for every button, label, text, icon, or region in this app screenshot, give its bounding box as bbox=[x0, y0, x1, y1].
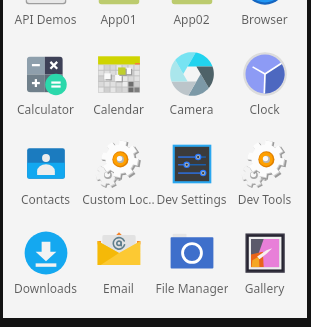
button[interactable]: App02 bbox=[155, 0, 228, 29]
staticText: App01 bbox=[82, 11, 155, 27]
button[interactable]: Downloads bbox=[9, 208, 82, 298]
staticText: Dev Settings bbox=[155, 191, 228, 207]
staticText: Calculator bbox=[9, 101, 82, 117]
button[interactable]: Contacts bbox=[9, 119, 82, 209]
staticText: Custom Loc‥ bbox=[82, 191, 155, 207]
staticText: Camera bbox=[155, 101, 228, 117]
button[interactable]: File Manager bbox=[155, 208, 228, 298]
staticText: Calendar bbox=[82, 101, 155, 117]
staticText: Clock bbox=[228, 101, 301, 117]
staticText: Email bbox=[82, 280, 155, 296]
staticText: App02 bbox=[155, 11, 228, 27]
button[interactable]: Calculator bbox=[9, 29, 82, 119]
button[interactable]: App01 bbox=[82, 0, 155, 29]
button[interactable]: Dev Settings bbox=[155, 119, 228, 209]
staticText: Gallery bbox=[228, 280, 301, 296]
staticText: API Demos bbox=[9, 11, 82, 27]
button[interactable]: API Demos bbox=[9, 0, 82, 29]
button[interactable]: Gallery bbox=[228, 208, 301, 298]
staticText: Contacts bbox=[9, 191, 82, 207]
staticText: Downloads bbox=[9, 280, 82, 296]
button[interactable]: Browser bbox=[228, 0, 301, 29]
button[interactable]: Calendar bbox=[82, 29, 155, 119]
button[interactable]: Dev Tools bbox=[228, 119, 301, 209]
staticText: Dev Tools bbox=[228, 191, 301, 207]
button[interactable]: Clock bbox=[228, 29, 301, 119]
button[interactable]: Email bbox=[82, 208, 155, 298]
button[interactable]: Custom Loc‥ bbox=[82, 119, 155, 209]
button[interactable]: Camera bbox=[155, 29, 228, 119]
staticText: File Manager bbox=[155, 280, 228, 296]
staticText: Browser bbox=[228, 11, 301, 27]
